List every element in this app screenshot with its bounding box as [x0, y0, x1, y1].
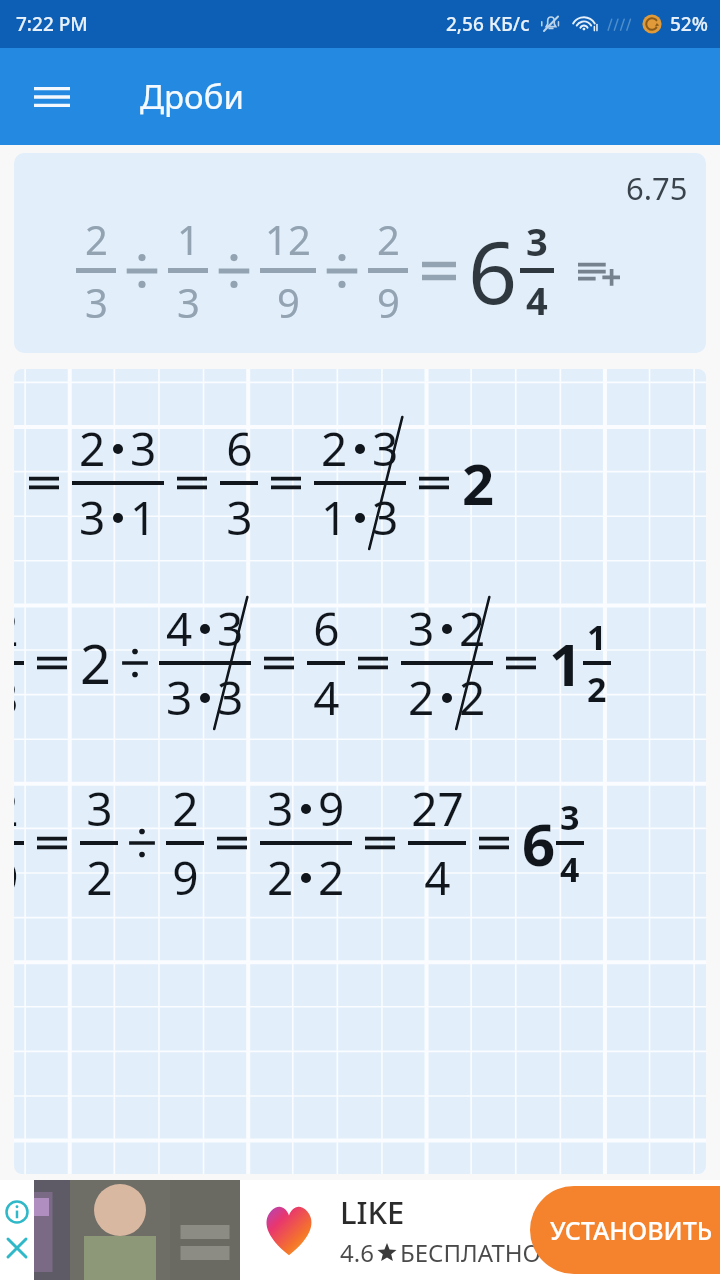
- staticText: 2: [408, 666, 435, 729]
- staticText: 3: [526, 215, 548, 267]
- staticText: 2: [318, 846, 345, 909]
- button[interactable]: Close ad: [2, 1233, 32, 1263]
- staticText: 3: [217, 597, 244, 660]
- staticText: 4: [424, 846, 451, 909]
- staticText: 2: [14, 597, 19, 660]
- button[interactable]: 6.75: [14, 153, 706, 353]
- staticText: 9: [14, 846, 19, 909]
- staticText: 3: [130, 417, 157, 480]
- staticText: УСТАНОВИТЬ: [550, 1213, 713, 1247]
- button[interactable]: Open navigation menu: [22, 67, 82, 127]
- staticText: 2,56 КБ/c: [446, 11, 530, 37]
- staticText: 9: [377, 275, 400, 329]
- staticText: 3: [79, 486, 106, 549]
- staticText: 6: [226, 417, 253, 480]
- staticText: 2: [459, 597, 486, 660]
- button[interactable]: Add to list: [572, 244, 626, 298]
- staticText: 2: [79, 417, 106, 480]
- staticText: 12: [265, 212, 311, 266]
- staticText: 3: [217, 666, 244, 729]
- staticText: 4: [560, 846, 580, 892]
- button[interactable]: 2: [14, 369, 706, 1174]
- button[interactable]: Ad information: [2, 1197, 32, 1227]
- staticText: 27: [411, 777, 464, 840]
- staticText: 2: [267, 846, 294, 909]
- staticText: 6: [313, 597, 340, 660]
- staticText: 9: [318, 777, 345, 840]
- staticText: 9: [172, 846, 199, 909]
- staticText: 6: [468, 212, 518, 329]
- staticText: 3: [267, 777, 294, 840]
- staticText: Дроби: [140, 74, 244, 119]
- staticText: 9: [277, 275, 300, 329]
- staticText: 1: [177, 212, 200, 266]
- staticText: 3: [226, 486, 253, 549]
- staticText: 2: [459, 666, 486, 729]
- staticText: 3: [14, 666, 19, 729]
- staticText: 1: [321, 486, 348, 549]
- staticText: 2: [14, 777, 19, 840]
- staticText: 52%: [670, 11, 708, 37]
- staticText: 1: [549, 624, 583, 703]
- staticText: LIKE: [340, 1191, 405, 1233]
- staticText: 2: [462, 445, 495, 521]
- staticText: 1: [587, 614, 607, 660]
- button[interactable]: Ad information: [0, 1180, 720, 1280]
- staticText: 2: [172, 777, 199, 840]
- staticText: 7:22 PM: [16, 11, 88, 37]
- staticText: 3: [86, 777, 113, 840]
- staticText: 4.6: [340, 1236, 374, 1269]
- staticText: 3: [85, 275, 108, 329]
- staticText: 3: [166, 666, 193, 729]
- staticText: БЕСПЛАТНО: [400, 1236, 541, 1269]
- staticText: 4: [526, 274, 548, 326]
- staticText: 4: [166, 597, 193, 660]
- staticText: 4: [313, 666, 340, 729]
- staticText: 3: [372, 417, 399, 480]
- staticText: 6: [522, 804, 556, 883]
- staticText: 6.75: [626, 167, 688, 209]
- staticText: 3: [372, 486, 399, 549]
- staticText: 1: [130, 486, 157, 549]
- staticText: 2: [86, 846, 113, 909]
- staticText: 2: [377, 212, 400, 266]
- staticText: 3: [408, 597, 435, 660]
- staticText: 2: [85, 212, 108, 266]
- staticText: 3: [560, 794, 580, 840]
- staticText: 2: [587, 666, 607, 712]
- staticText: 2: [321, 417, 348, 480]
- staticText: 2: [80, 626, 111, 700]
- button[interactable]: УСТАНОВИТЬ: [530, 1186, 720, 1274]
- staticText: 3: [177, 275, 200, 329]
